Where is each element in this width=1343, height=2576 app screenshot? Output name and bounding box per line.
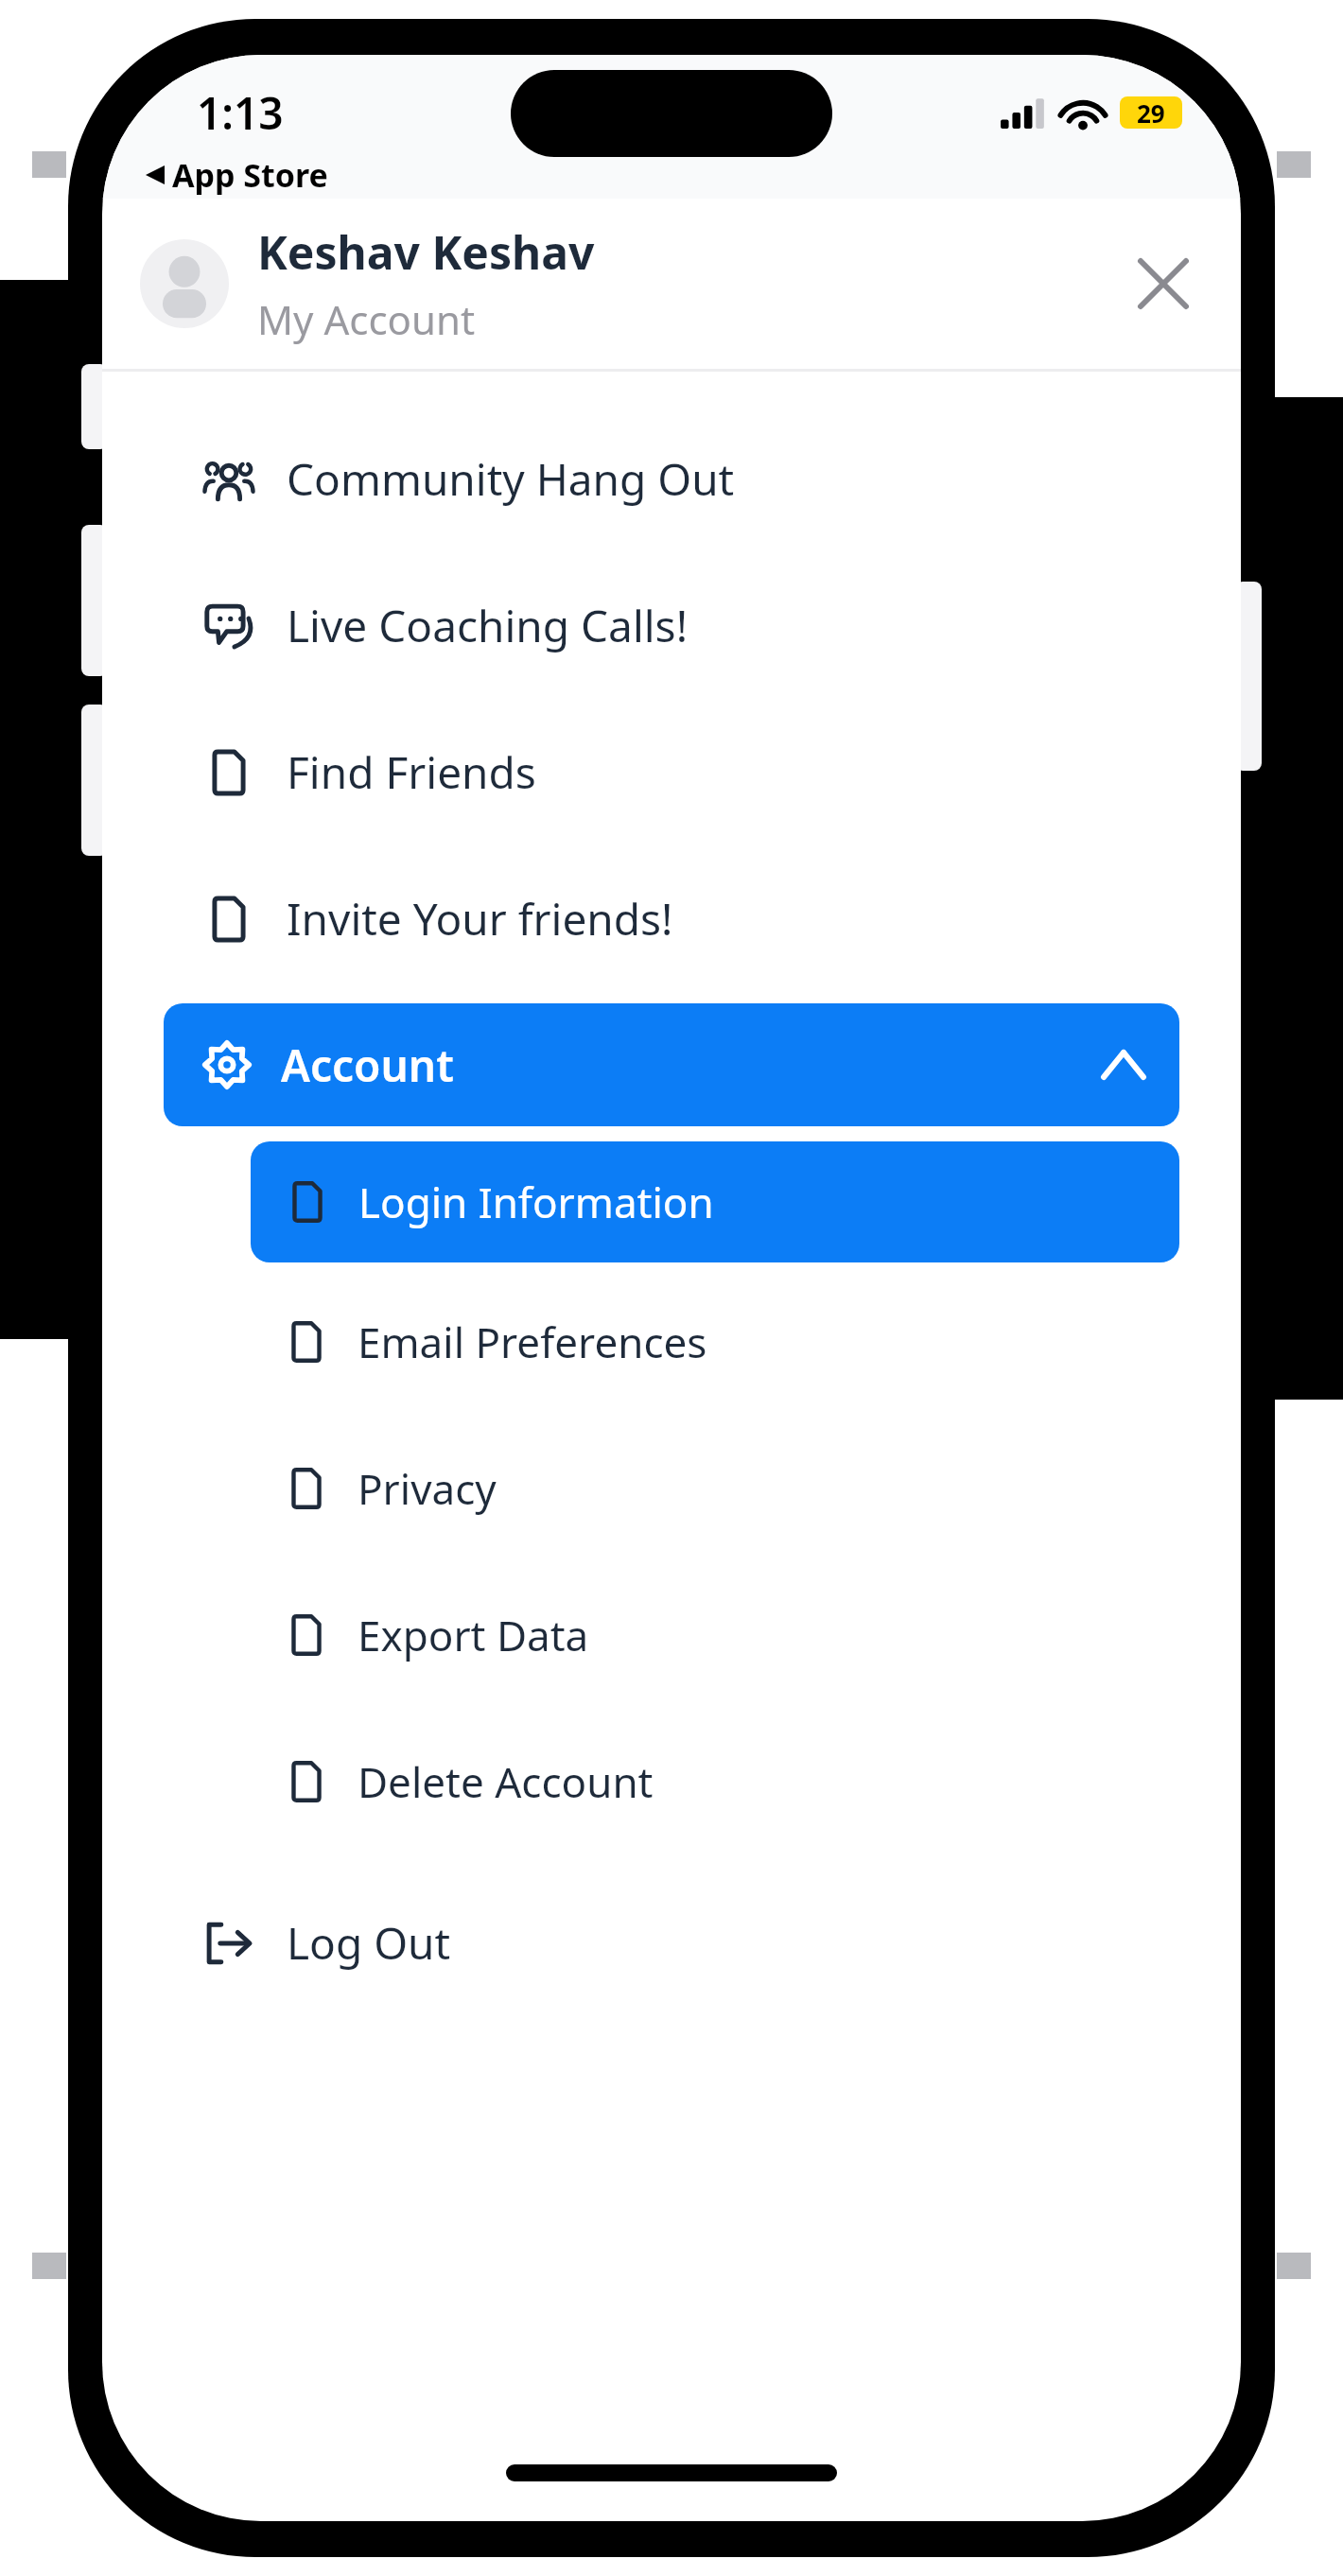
staticText: Export Data — [358, 1607, 589, 1663]
button[interactable]: Live Coaching Calls! — [102, 552, 1241, 699]
button[interactable]: Delete Account — [102, 1708, 1241, 1854]
button[interactable]: Account — [164, 1003, 1179, 1126]
staticText: 1:13 — [197, 83, 284, 143]
button[interactable]: Close — [1124, 244, 1203, 323]
button[interactable]: Log Out — [102, 1870, 1241, 2016]
staticText: Log Out — [287, 1913, 451, 1973]
button[interactable]: Invite Your friends! — [102, 845, 1241, 992]
button[interactable]: Find Friends — [102, 699, 1241, 845]
staticText: My Account — [257, 292, 476, 346]
staticText: Find Friends — [287, 742, 536, 802]
staticText: Privacy — [358, 1460, 497, 1517]
button[interactable]: Profile photo — [140, 239, 229, 328]
staticText: Login Information — [358, 1174, 714, 1230]
staticText: Email Preferences — [358, 1314, 707, 1370]
staticText: Delete Account — [358, 1753, 654, 1810]
button[interactable]: Email Preferences — [102, 1268, 1241, 1415]
staticText: 29 — [1137, 96, 1165, 129]
button[interactable]: Privacy — [102, 1415, 1241, 1561]
button[interactable]: Login Information — [251, 1141, 1179, 1262]
staticText: Invite Your friends! — [287, 889, 673, 949]
button[interactable]: Community Hang Out — [102, 406, 1241, 552]
staticText: Live Coaching Calls! — [287, 596, 689, 655]
staticText: Keshav Keshav — [257, 221, 595, 283]
staticText: Account — [281, 1036, 454, 1095]
button[interactable]: App Store — [138, 149, 336, 200]
staticText: App Store — [172, 153, 328, 197]
staticText: Community Hang Out — [287, 449, 735, 509]
button[interactable]: Export Data — [102, 1561, 1241, 1708]
